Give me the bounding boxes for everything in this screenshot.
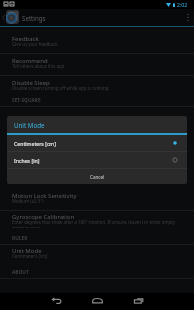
staticText: Unit Mode [12,247,42,255]
button[interactable]: Disable Sleep [0,76,194,96]
staticText: Recommend [12,57,48,65]
staticText: Gyroscope Calibration [12,213,75,221]
staticText: RULER [12,235,28,242]
staticText: Centimeters [cm] [12,253,48,259]
button[interactable]: Inches [in] [7,152,187,168]
staticText: Settings [22,14,46,22]
button[interactable]: Unit Mode [0,244,194,264]
button[interactable]: Recents [128,292,150,309]
staticText: SET-SQUARE [12,97,41,104]
button[interactable]: Feedback [0,32,194,52]
staticText: Medium (±0.5°) [12,198,44,204]
staticText: Enter degrees that show after a 180° rot… [12,219,180,228]
staticText: Motion Lock Sensitivity [12,192,77,200]
staticText: Disable Sleep [12,79,50,87]
staticText: 2:02 [177,1,188,8]
staticText: Centimeters [cm] [14,140,56,147]
button[interactable]: Recommend [0,54,194,74]
staticText: Disable screen turning off while app is … [12,85,109,91]
staticText: Give us your feedback [12,41,58,47]
staticText: Unit Mode [14,121,45,129]
button[interactable]: Motion Lock Sensitivity [0,189,194,209]
staticText: Tell others about this app [12,63,65,69]
staticText: Feedback [12,35,39,43]
button[interactable]: Home [86,292,108,309]
button[interactable]: More options [181,9,194,26]
staticText: Cancel [90,174,105,180]
button[interactable]: Cancel [7,169,187,184]
button[interactable]: Centimeters [cm] [7,135,187,151]
button[interactable]: Gyroscope Calibration [0,210,194,230]
button[interactable]: Navigate up [0,9,194,26]
staticText: ABOUT [12,269,29,276]
staticText: Inches [in] [14,157,40,164]
button[interactable]: Back [45,292,67,309]
